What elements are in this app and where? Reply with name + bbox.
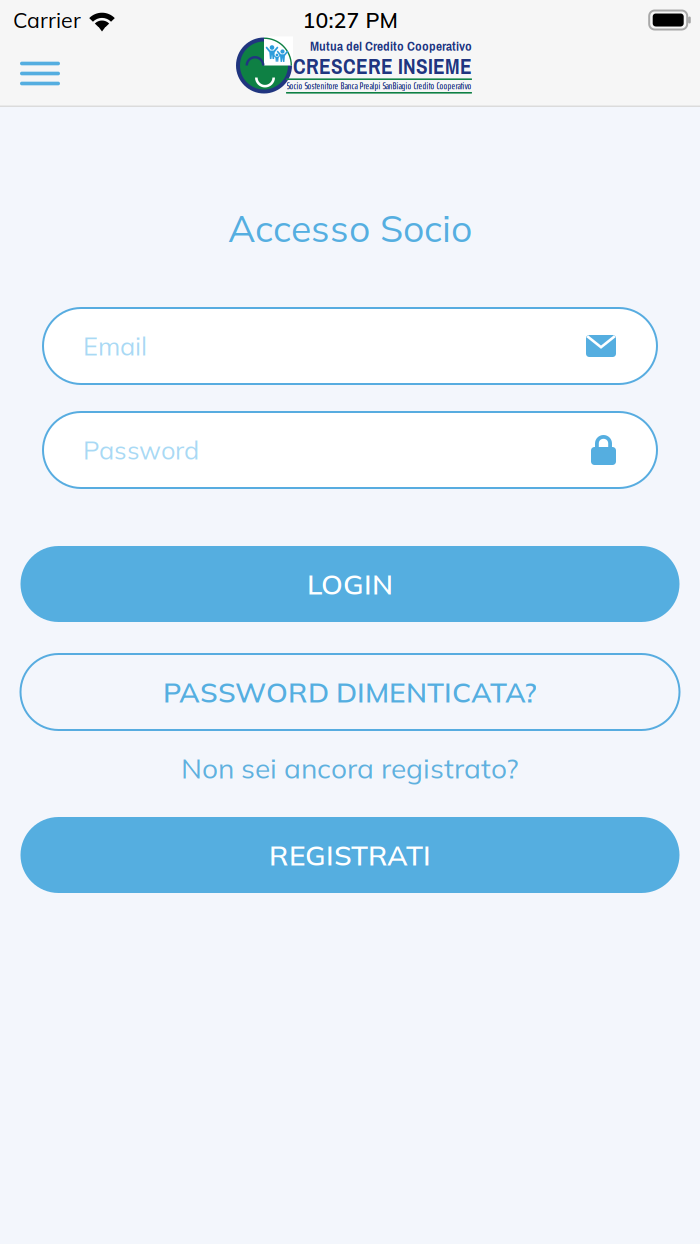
button[interactable]: Password <box>43 412 657 488</box>
button[interactable]: LOGIN <box>20 546 679 622</box>
staticText: PASSWORD DIMENTICATA? <box>163 674 537 709</box>
staticText: Mutua del Credito Cooperativo <box>310 37 472 55</box>
button[interactable]: Menu <box>0 44 69 102</box>
button[interactable]: Email <box>43 308 657 384</box>
staticText: Carrier <box>13 7 81 33</box>
staticText: LOGIN <box>307 566 393 601</box>
staticText: Non sei ancora registrato? <box>181 750 519 785</box>
staticText: Accesso Socio <box>228 205 472 251</box>
staticText: Socio Sostenitore Banca Prealpi SanBiagi… <box>286 79 471 93</box>
staticText: REGISTRATI <box>269 837 431 872</box>
button[interactable]: PASSWORD DIMENTICATA? <box>20 654 679 730</box>
button[interactable]: REGISTRATI <box>20 817 679 893</box>
staticText: Email <box>83 330 147 362</box>
staticText: CRESCERE INSIEME <box>293 52 472 81</box>
staticText: Password <box>83 434 199 466</box>
staticText: 10:27 PM <box>302 7 397 33</box>
button[interactable]: Non sei ancora registrato? <box>161 744 539 792</box>
